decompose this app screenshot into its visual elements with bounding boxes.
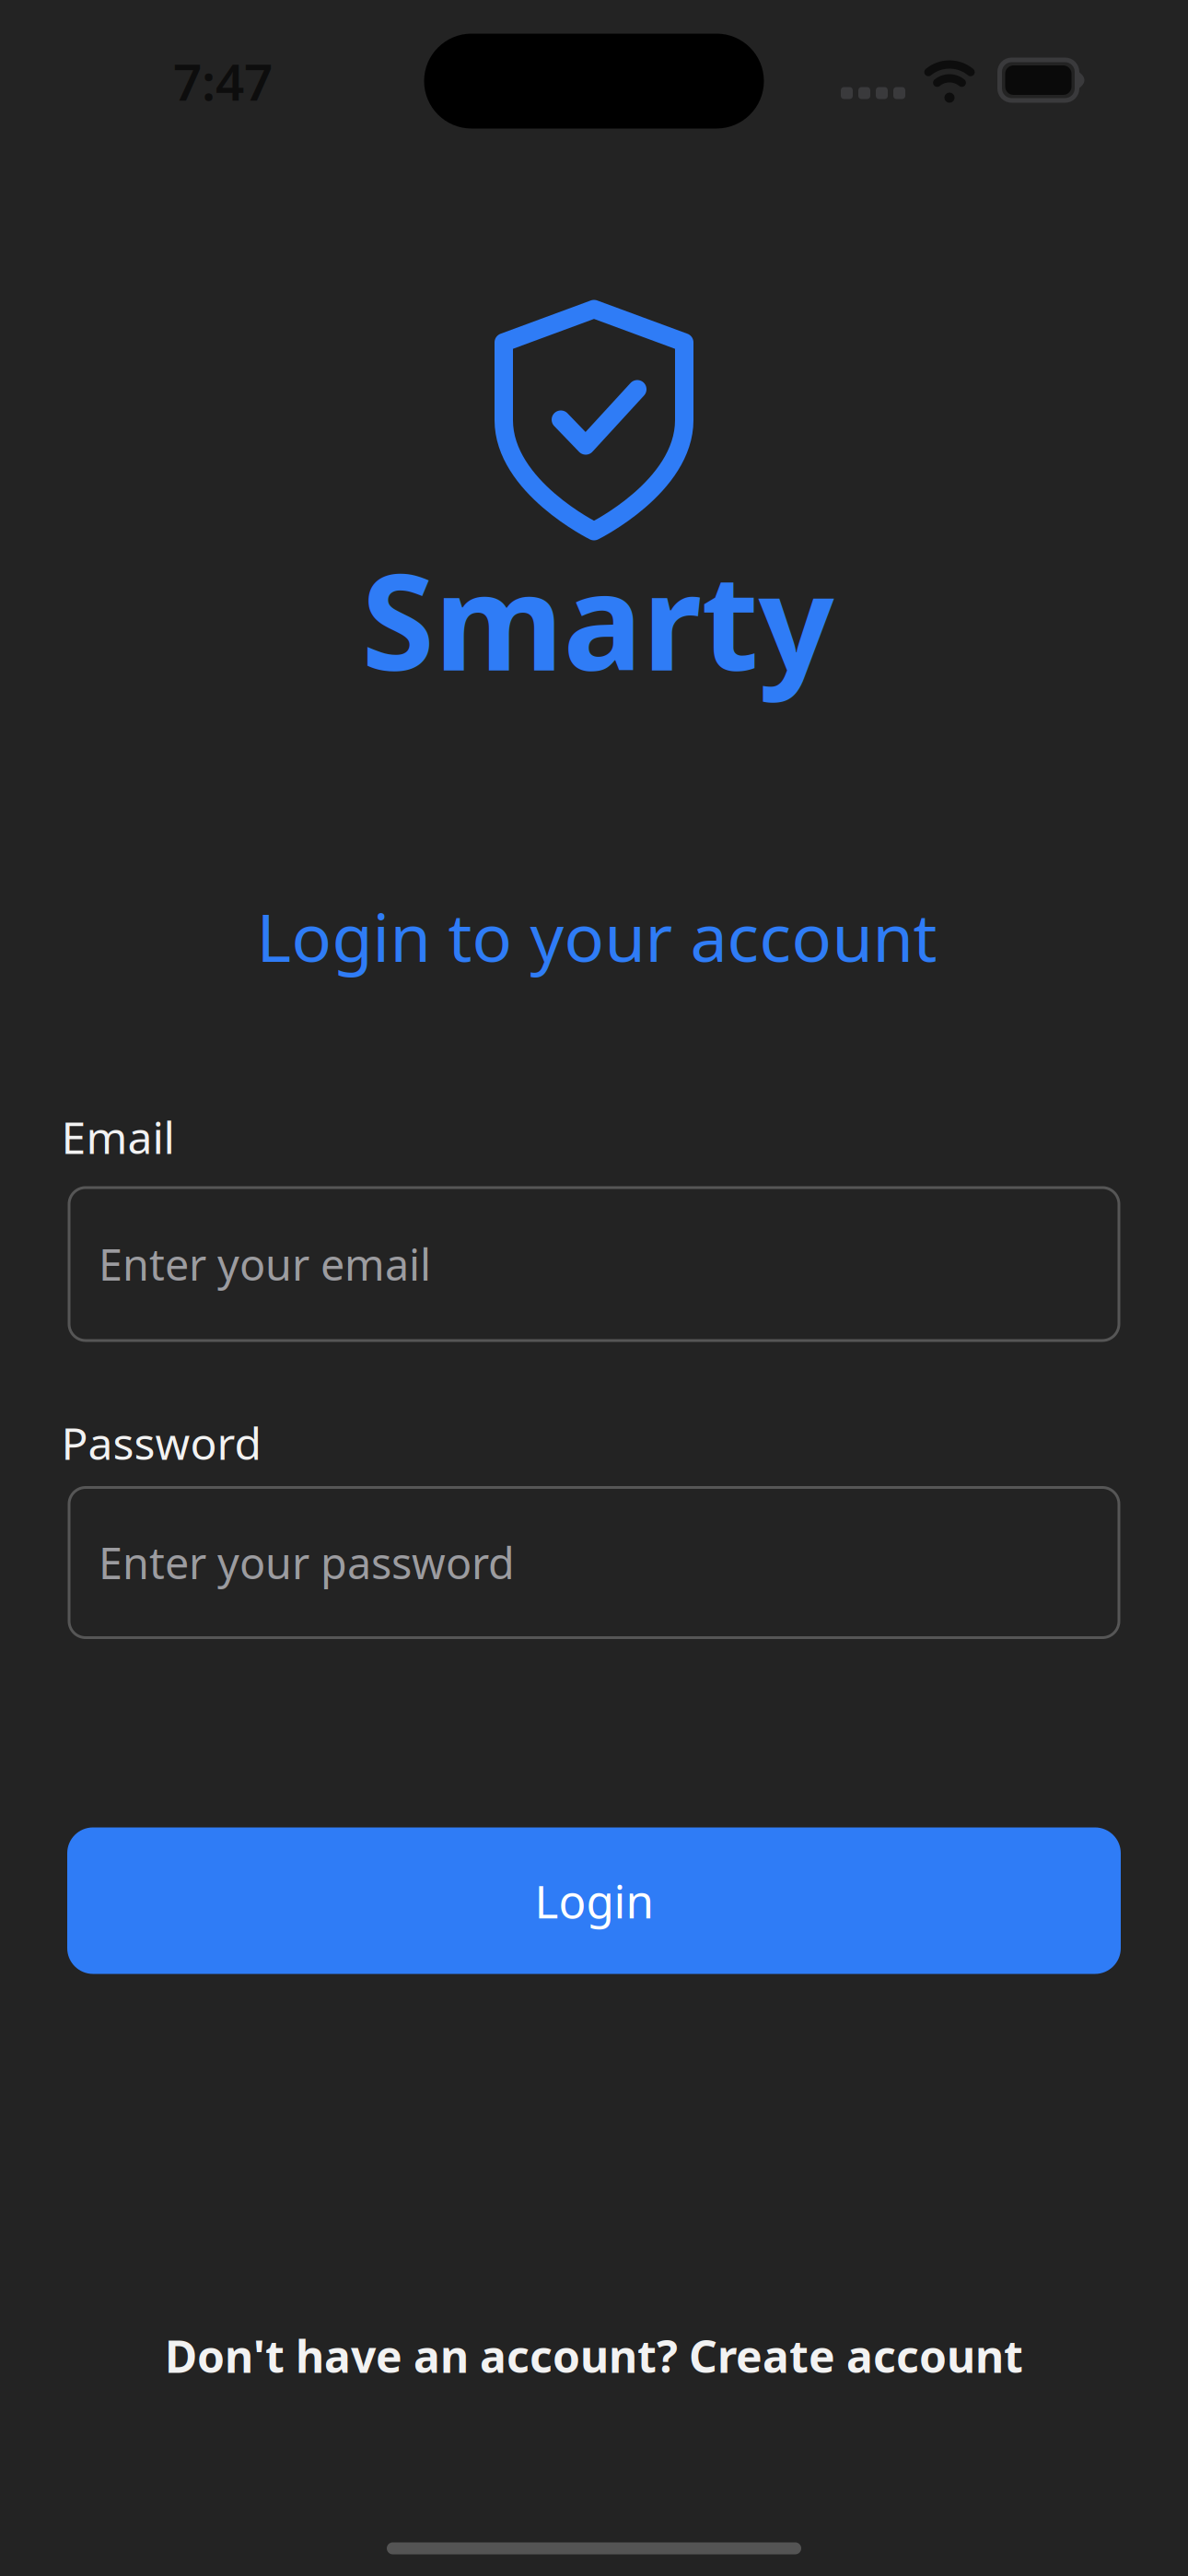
staticText: Don't have an account? Create account bbox=[165, 2326, 1023, 2385]
staticText: Email bbox=[61, 1108, 175, 1166]
button[interactable]: Enter your password bbox=[69, 1487, 1119, 1638]
button[interactable]: Don't have an account? Create account bbox=[165, 2326, 1023, 2385]
staticText: Password bbox=[61, 1413, 262, 1472]
staticText: Login bbox=[535, 1870, 653, 1931]
staticText: Login to your account bbox=[256, 892, 937, 980]
button[interactable]: Enter your email bbox=[69, 1188, 1119, 1341]
staticText: 7:47 bbox=[173, 48, 273, 115]
staticText: Smarty bbox=[361, 531, 834, 707]
button[interactable]: Login bbox=[67, 1827, 1121, 1974]
staticText: Enter your email bbox=[99, 1235, 431, 1293]
staticText: Enter your password bbox=[99, 1534, 515, 1591]
